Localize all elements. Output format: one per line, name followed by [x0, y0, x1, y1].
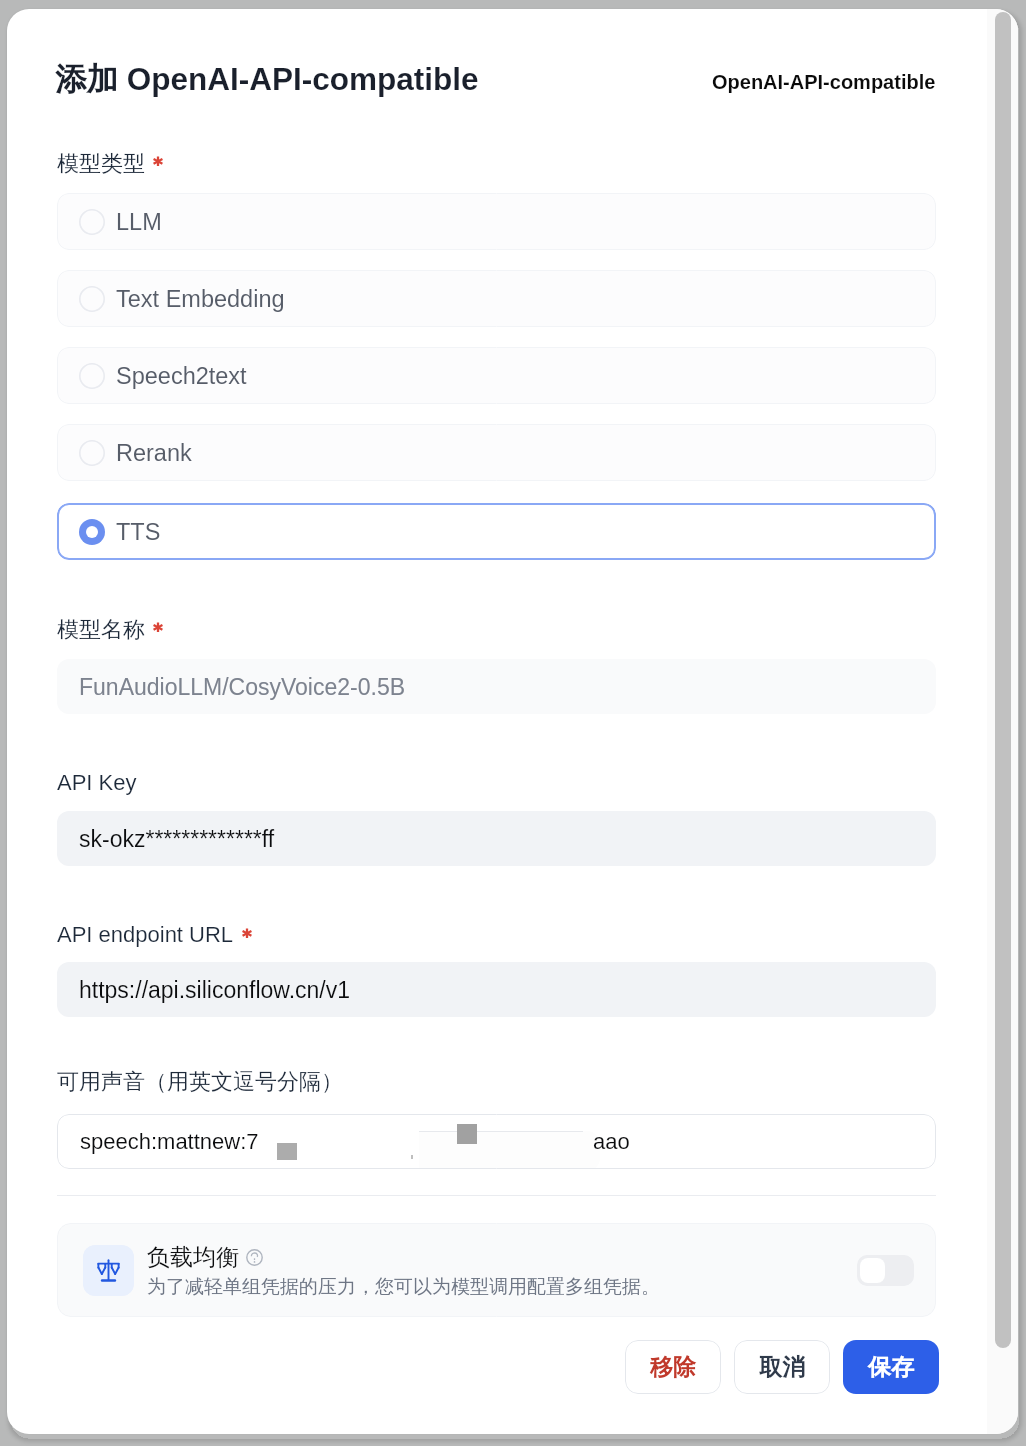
- staticText: API endpoint URL: [57, 922, 234, 947]
- button[interactable]: sk-okz*************ff: [57, 811, 936, 866]
- staticText: https://api.siliconflow.cn/v1: [79, 977, 351, 1003]
- staticText: OpenAI-API-compatible: [712, 71, 936, 93]
- staticText: Speech2text: [116, 363, 247, 389]
- staticText: 模型名称: [57, 616, 145, 644]
- staticText: sk-okz*************ff: [79, 826, 275, 852]
- button[interactable]: LLM: [57, 193, 936, 250]
- button[interactable]: 移除: [625, 1340, 721, 1394]
- button[interactable]: https://api.siliconflow.cn/v1: [57, 962, 936, 1017]
- button[interactable]: TTS: [57, 503, 936, 560]
- staticText: Rerank: [116, 440, 192, 466]
- staticText: 保存: [868, 1353, 914, 1382]
- button[interactable]: Text Embedding: [57, 270, 936, 327]
- button[interactable]: Speech2text: [57, 347, 936, 404]
- button[interactable]: 保存: [843, 1340, 939, 1394]
- staticText: speech:mattnew:7: [80, 1129, 259, 1154]
- staticText: 添加 OpenAI-API-compatible: [55, 60, 479, 100]
- staticText: 取消: [759, 1353, 805, 1382]
- staticText: aao: [593, 1129, 630, 1154]
- button[interactable]: FunAudioLLM/CosyVoice2-0.5B: [57, 659, 936, 714]
- button[interactable]: Rerank: [57, 424, 936, 481]
- staticText: TTS: [116, 519, 161, 545]
- staticText: API Key: [57, 770, 137, 795]
- button[interactable]: Toggle load balancing: [857, 1255, 914, 1286]
- staticText: FunAudioLLM/CosyVoice2-0.5B: [79, 674, 406, 700]
- button[interactable]: 取消: [734, 1340, 830, 1394]
- staticText: 为了减轻单组凭据的压力，您可以为模型调用配置多组凭据。: [147, 1275, 660, 1299]
- staticText: 可用声音（用英文逗号分隔）: [57, 1068, 343, 1096]
- staticText: 移除: [650, 1353, 696, 1382]
- staticText: Text Embedding: [116, 286, 285, 312]
- staticText: 负载均衡: [147, 1243, 239, 1272]
- staticText: 模型类型: [57, 150, 145, 178]
- staticText: LLM: [116, 209, 162, 235]
- button[interactable]: speech:mattnew:7: [57, 1114, 936, 1169]
